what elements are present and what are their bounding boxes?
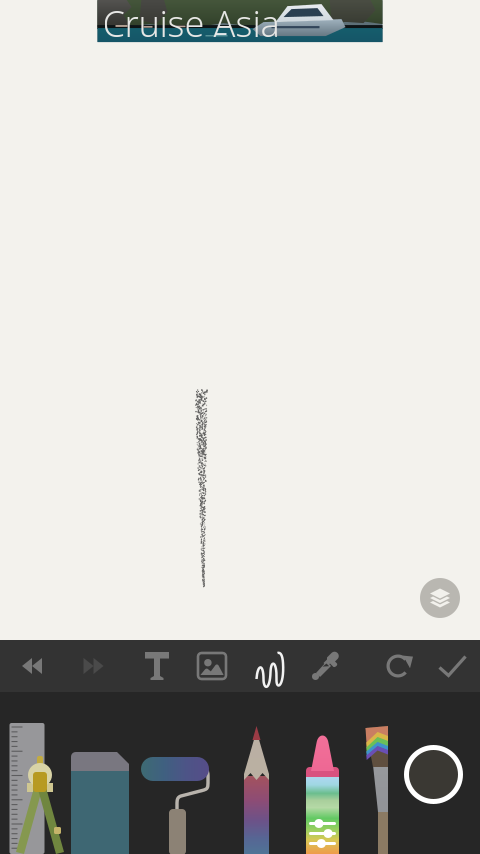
button[interactable]: Reset	[373, 640, 425, 692]
button[interactable]: Insert photo	[186, 640, 238, 692]
button[interactable]: Draw	[244, 640, 296, 692]
button[interactable]: Current colour	[404, 745, 463, 804]
button[interactable]: Layers	[420, 578, 460, 618]
button[interactable]: Text	[131, 640, 183, 692]
button[interactable]: Color picker	[299, 640, 351, 692]
button[interactable]: Cruise Asia advertisement	[97, 0, 382, 44]
staticText: Cruise Asia	[102, 0, 279, 47]
button[interactable]: Undo	[6, 640, 58, 692]
button[interactable]: Done	[426, 640, 478, 692]
button[interactable]: Redo	[67, 640, 119, 692]
